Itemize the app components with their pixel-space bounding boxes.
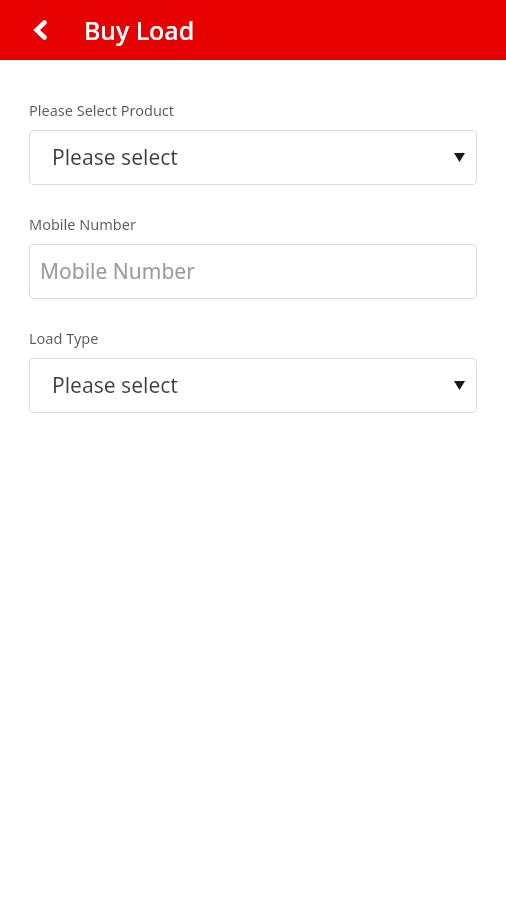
- staticText: Buy Load: [84, 13, 195, 47]
- button[interactable]: Mobile Number: [29, 244, 477, 299]
- staticText: Please select: [52, 143, 454, 172]
- button[interactable]: Please select: [29, 130, 477, 185]
- staticText: Load Type: [29, 328, 99, 348]
- staticText: Mobile Number: [29, 214, 136, 234]
- button[interactable]: Back: [20, 9, 62, 51]
- staticText: Please select: [52, 371, 454, 400]
- button[interactable]: Please select: [29, 358, 477, 413]
- staticText: Please Select Product: [29, 100, 175, 120]
- staticText: Mobile Number: [40, 257, 195, 286]
